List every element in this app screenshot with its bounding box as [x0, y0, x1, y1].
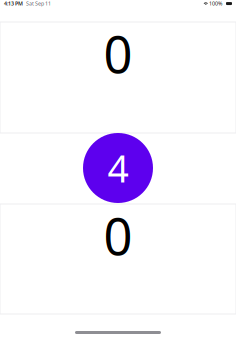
staticText: 0	[103, 20, 132, 87]
button[interactable]: 0	[0, 204, 236, 314]
button[interactable]: 0	[0, 22, 236, 133]
button[interactable]: 4	[83, 133, 153, 203]
staticText: 100%	[209, 0, 222, 7]
staticText: 4:13 PM	[4, 0, 23, 7]
staticText: Sat Sep 11	[26, 0, 51, 7]
staticText: 0	[103, 202, 132, 269]
staticText: 4	[107, 143, 128, 193]
